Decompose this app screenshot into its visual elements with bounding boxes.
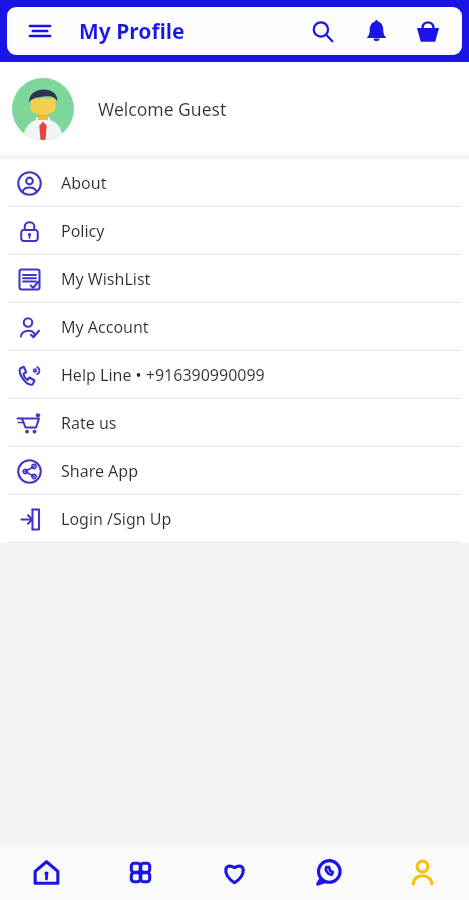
button[interactable]: My WishList bbox=[0, 255, 469, 302]
staticText: Share App bbox=[61, 460, 139, 482]
staticText: Welcome Guest bbox=[98, 97, 227, 121]
staticText: Rate us bbox=[61, 412, 117, 434]
button[interactable]: Categories bbox=[93, 844, 187, 900]
button[interactable]: Rate us bbox=[0, 399, 469, 446]
staticText: My Account bbox=[61, 316, 149, 338]
button[interactable]: Policy bbox=[0, 207, 469, 254]
staticText: My WishList bbox=[61, 268, 151, 290]
button[interactable]: WhatsApp bbox=[281, 844, 375, 900]
button[interactable]: Help Line • +916390990099 bbox=[0, 351, 469, 398]
button[interactable]: About bbox=[0, 159, 469, 206]
button[interactable]: Wishlist bbox=[187, 844, 281, 900]
button[interactable]: Cart bbox=[408, 11, 448, 51]
button[interactable]: Home bbox=[0, 844, 93, 900]
staticText: Policy bbox=[61, 220, 105, 242]
button[interactable]: Profile bbox=[375, 844, 469, 900]
button[interactable]: Notifications bbox=[356, 11, 396, 51]
staticText: Login /Sign Up bbox=[61, 508, 172, 530]
button[interactable]: Search bbox=[302, 11, 342, 51]
staticText: My Profile bbox=[79, 17, 185, 46]
button[interactable]: Share App bbox=[0, 447, 469, 494]
button[interactable]: Menu bbox=[23, 14, 57, 48]
button[interactable]: My Account bbox=[0, 303, 469, 350]
button[interactable]: Login /Sign Up bbox=[0, 495, 469, 542]
staticText: About bbox=[61, 172, 107, 194]
staticText: Help Line • +916390990099 bbox=[61, 364, 265, 386]
